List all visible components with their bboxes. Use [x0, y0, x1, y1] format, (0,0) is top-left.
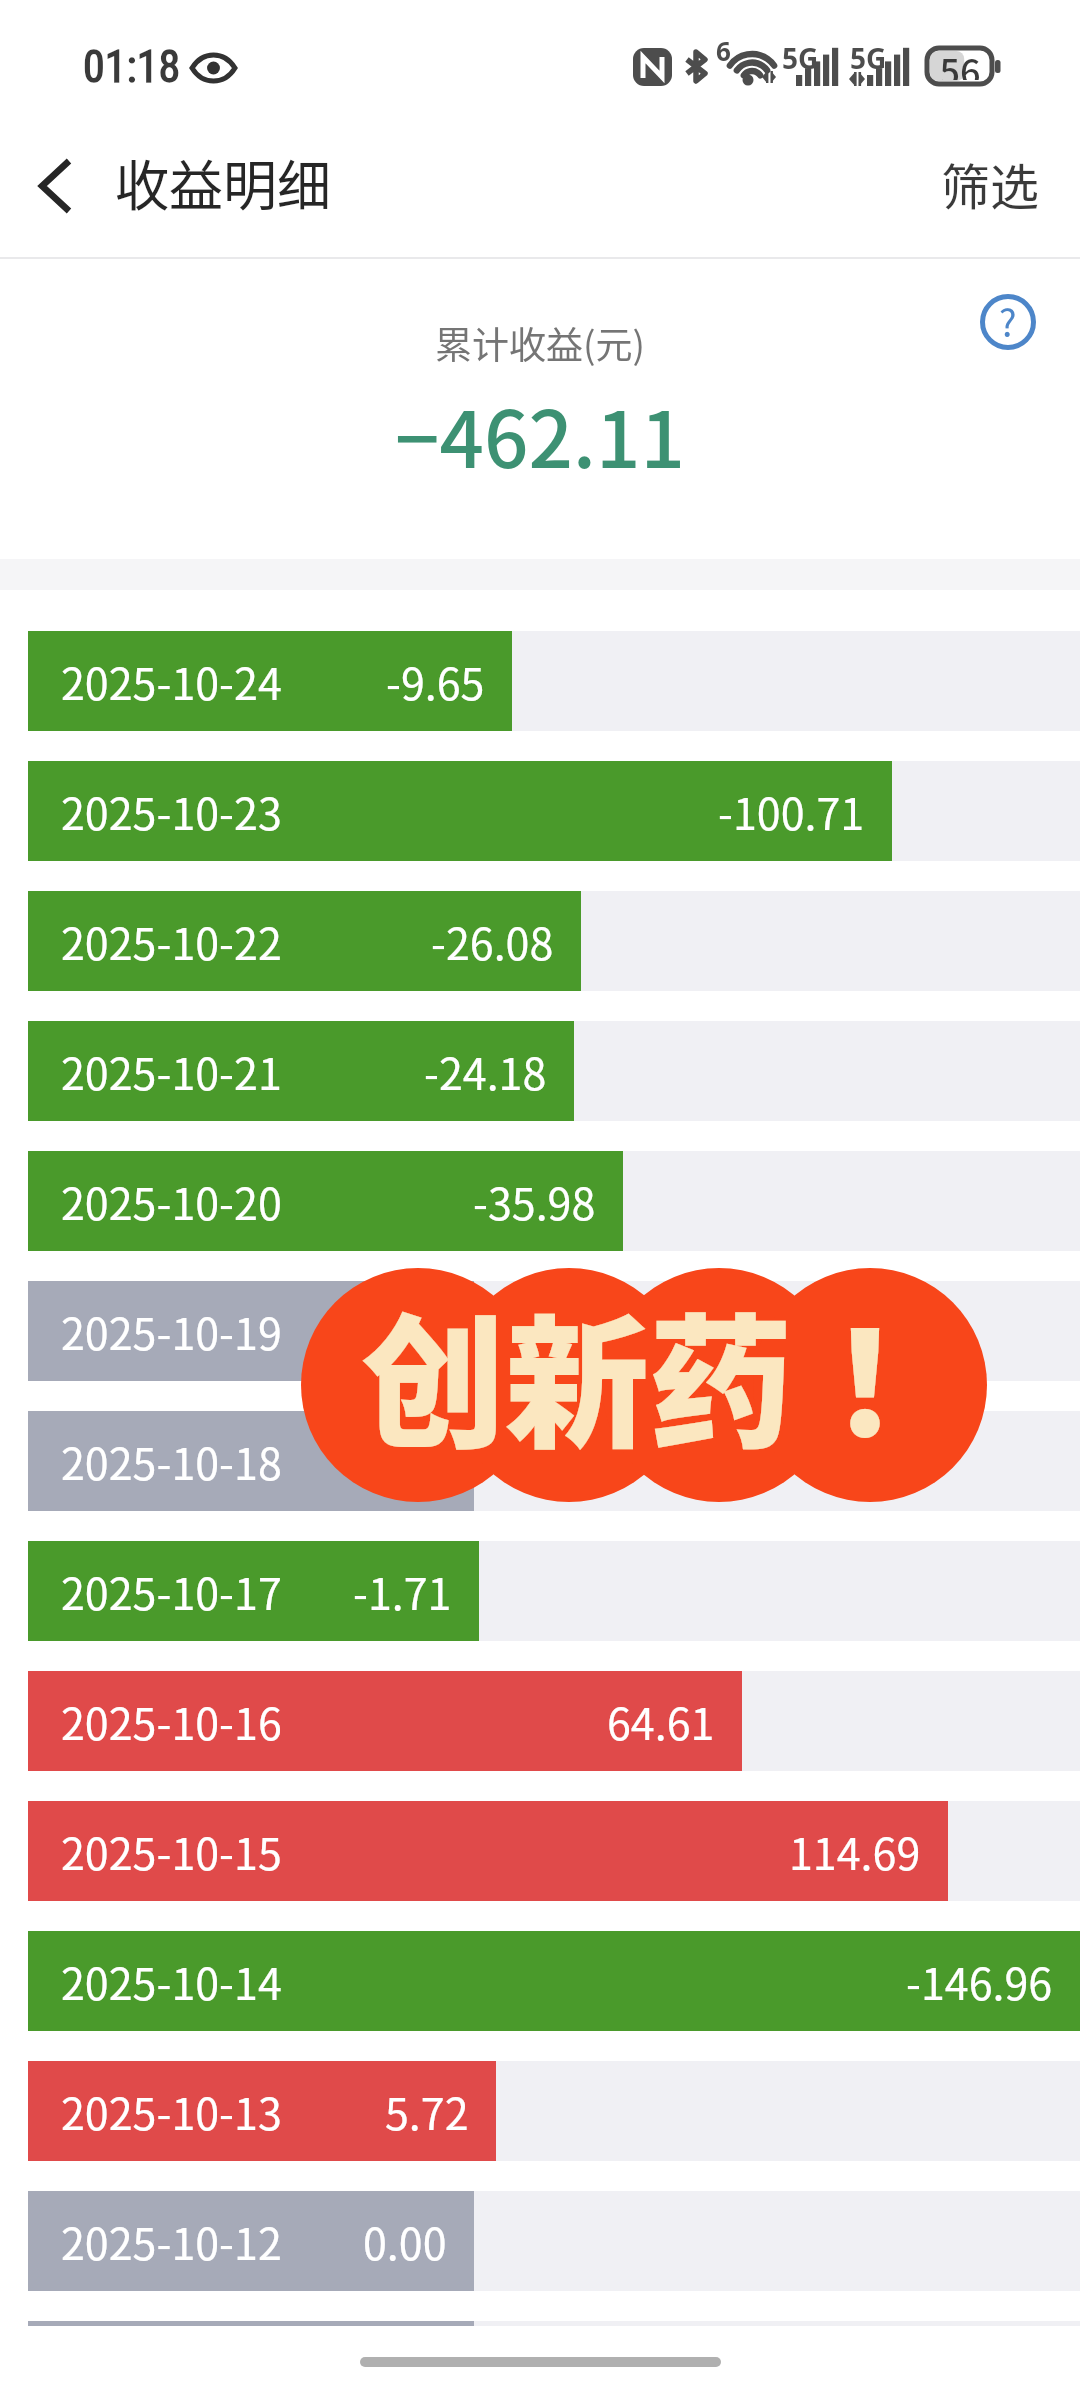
- staticText: ?: [999, 294, 1017, 348]
- staticText: -35.98: [473, 1170, 596, 1232]
- staticText: −462.11: [395, 378, 686, 491]
- button[interactable]: 2025-10-18: [0, 1411, 1080, 1511]
- staticText: 5G: [782, 39, 819, 77]
- button[interactable]: 2025-10-14: [0, 1931, 1080, 2031]
- staticText: 2025-10-22: [61, 910, 282, 972]
- staticText: -9.65: [386, 650, 485, 712]
- button[interactable]: 2025-10-12: [0, 2191, 1080, 2291]
- button[interactable]: 筛选: [923, 142, 1058, 237]
- staticText: -1.71: [353, 1560, 452, 1622]
- staticText: 筛选: [941, 148, 1040, 219]
- staticText: 2025-10-15: [61, 1820, 282, 1882]
- button[interactable]: 2025-10-24: [0, 631, 1080, 731]
- staticText: 2025-10-17: [61, 1560, 282, 1622]
- button[interactable]: 2025-10-20: [0, 1151, 1080, 1251]
- button[interactable]: 2025-10-23: [0, 761, 1080, 861]
- staticText: 64.61: [607, 1690, 715, 1752]
- button[interactable]: 2025-10-16: [0, 1671, 1080, 1771]
- staticText: 01:18: [83, 41, 181, 93]
- staticText: 56: [939, 44, 981, 80]
- staticText: 6: [716, 33, 731, 68]
- staticText: -24.18: [424, 1040, 547, 1102]
- button[interactable]: Back: [14, 149, 96, 231]
- button[interactable]: 2025-10-17: [0, 1541, 1080, 1641]
- staticText: 收益明细: [115, 143, 331, 221]
- staticText: 创新药！: [305, 1269, 993, 1478]
- staticText: -26.08: [431, 910, 554, 972]
- staticText: 114.69: [789, 1820, 921, 1882]
- button[interactable]: 2025-10-13: [0, 2061, 1080, 2161]
- staticText: 累计收益(元): [435, 316, 646, 370]
- staticText: -146.96: [906, 1950, 1053, 2012]
- button[interactable]: 2025-10-21: [0, 1021, 1080, 1121]
- button[interactable]: 2025-10-11: [0, 2321, 1080, 2326]
- staticText: 2025-10-16: [61, 1690, 282, 1752]
- staticText: 5.72: [385, 2080, 469, 2142]
- staticText: 2025-10-18: [61, 1430, 282, 1492]
- button[interactable]: 2025-10-19: [0, 1281, 1080, 1381]
- staticText: 2025-10-14: [61, 1950, 282, 2012]
- staticText: 2025-10-23: [61, 780, 282, 842]
- staticText: -100.71: [718, 780, 865, 842]
- staticText: 2025-10-21: [61, 1040, 282, 1102]
- staticText: 2025-10-19: [61, 1300, 282, 1362]
- staticText: 2025-10-13: [61, 2080, 282, 2142]
- button[interactable]: Help: [980, 294, 1036, 350]
- staticText: 2025-10-12: [61, 2210, 282, 2272]
- staticText: 2025-10-24: [61, 650, 282, 712]
- staticText: 0.00: [363, 2210, 447, 2272]
- staticText: 2025-10-20: [61, 1170, 282, 1232]
- button[interactable]: 2025-10-15: [0, 1801, 1080, 1901]
- staticText: 5G: [850, 39, 887, 77]
- button[interactable]: 2025-10-22: [0, 891, 1080, 991]
